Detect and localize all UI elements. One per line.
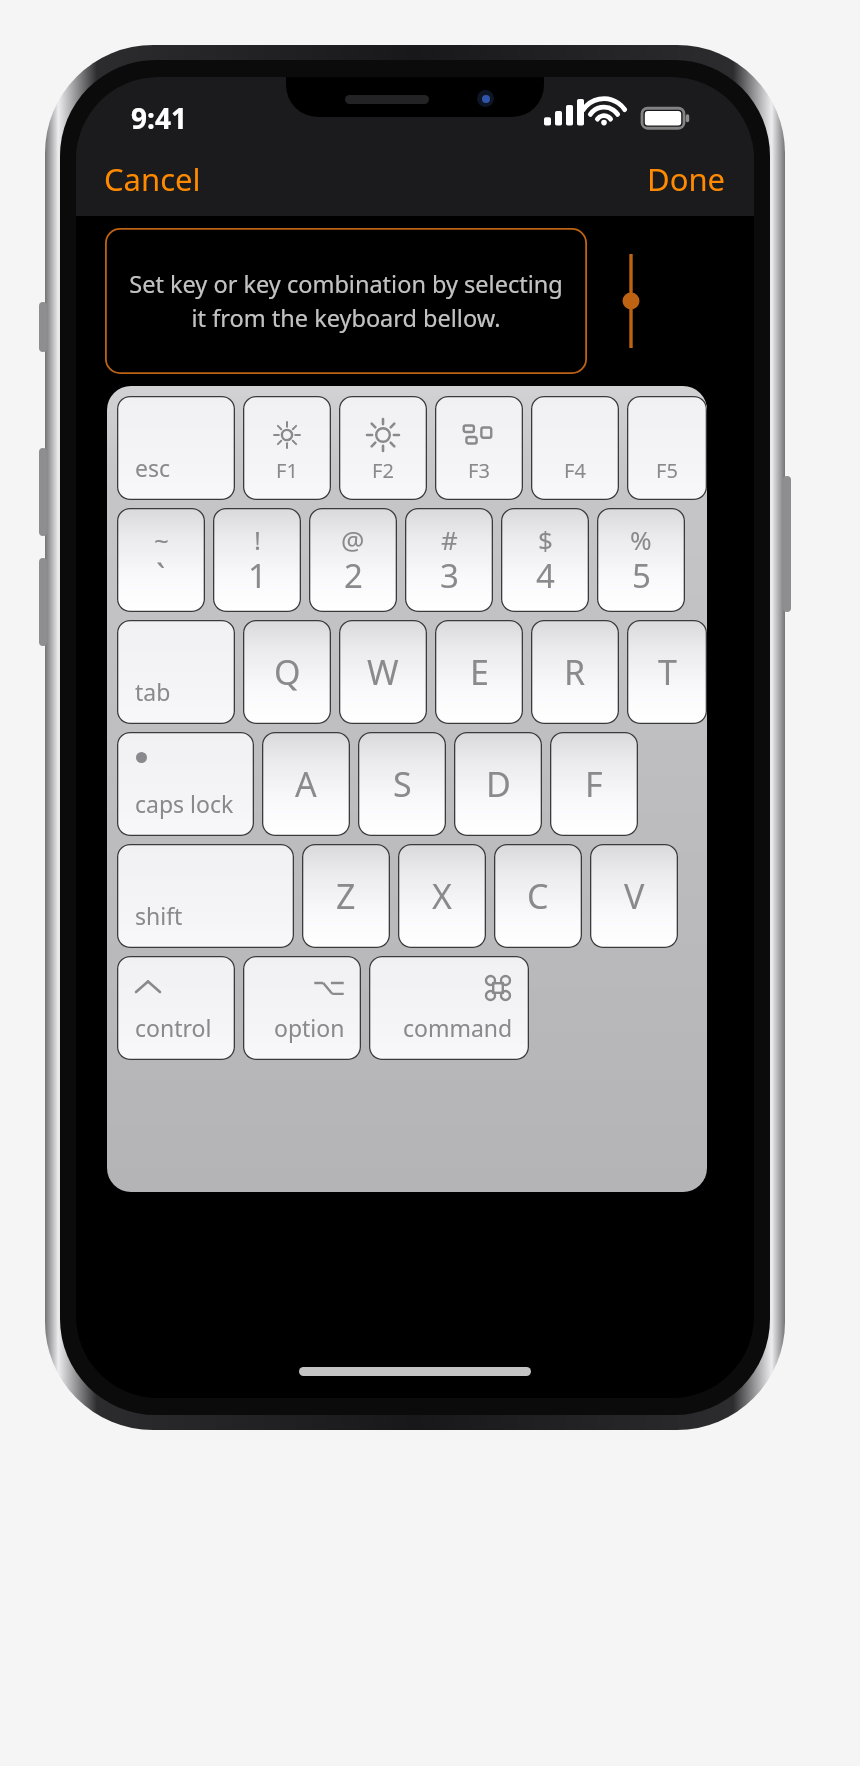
staticText: F2 — [372, 457, 394, 484]
staticText: 5 — [632, 553, 651, 598]
staticText: shift — [135, 900, 183, 931]
staticText: # — [441, 522, 458, 557]
button[interactable]: S — [358, 732, 446, 836]
button[interactable]: Z — [302, 844, 390, 948]
staticText: Done — [647, 158, 726, 200]
staticText: ` — [156, 553, 166, 598]
staticText: F4 — [564, 457, 586, 484]
button[interactable]: F1 — [243, 396, 331, 500]
staticText: esc — [135, 452, 171, 483]
staticText: C — [527, 873, 549, 919]
staticText: 3 — [440, 553, 459, 598]
button[interactable]: F — [550, 732, 638, 836]
button[interactable]: F5 — [627, 396, 707, 500]
button[interactable]: option — [243, 956, 361, 1060]
staticText: tab — [135, 676, 171, 707]
button[interactable]: # — [405, 508, 493, 612]
button[interactable]: Q — [243, 620, 331, 724]
button[interactable]: shift — [117, 844, 294, 948]
staticText: R — [564, 649, 586, 695]
staticText: caps lock — [135, 788, 234, 819]
button[interactable]: W — [339, 620, 427, 724]
staticText: F — [585, 761, 603, 807]
button[interactable]: % — [597, 508, 685, 612]
button[interactable]: Key indicator — [613, 254, 649, 348]
staticText: T — [658, 649, 677, 695]
staticText: A — [295, 761, 317, 807]
button[interactable]: Set key or key combination by selecting … — [105, 228, 587, 374]
button[interactable]: caps lock — [117, 732, 254, 836]
button[interactable]: tab — [117, 620, 235, 724]
button[interactable]: F2 — [339, 396, 427, 500]
staticText: 9:41 — [131, 99, 187, 137]
staticText: ! — [254, 522, 261, 557]
staticText: S — [393, 761, 412, 807]
button[interactable]: Cancel — [92, 150, 213, 208]
staticText: Cancel — [104, 158, 201, 200]
staticText: % — [630, 522, 652, 557]
staticText: E — [470, 649, 489, 695]
button[interactable]: ~ — [117, 508, 205, 612]
staticText: 1 — [248, 553, 267, 598]
button[interactable]: D — [454, 732, 542, 836]
button[interactable]: C — [494, 844, 582, 948]
staticText: Set key or key combination by selecting … — [129, 268, 563, 334]
staticText: option — [274, 1012, 345, 1043]
button[interactable]: F3 — [435, 396, 523, 500]
staticText: @ — [341, 522, 365, 557]
staticText: F5 — [656, 457, 678, 484]
staticText: W — [367, 649, 399, 695]
staticText: F1 — [276, 457, 298, 484]
staticText: 4 — [536, 553, 555, 598]
staticText: control — [135, 1012, 212, 1043]
button[interactable]: X — [398, 844, 486, 948]
staticText: X — [432, 873, 452, 919]
staticText: D — [486, 761, 511, 807]
staticText: Q — [274, 649, 301, 695]
button[interactable]: Done — [635, 150, 738, 208]
staticText: ~ — [154, 522, 169, 557]
staticText: F3 — [468, 457, 490, 484]
button[interactable]: A — [262, 732, 350, 836]
button[interactable]: control — [117, 956, 235, 1060]
staticText: V — [624, 873, 645, 919]
button[interactable]: T — [627, 620, 707, 724]
button[interactable]: V — [590, 844, 678, 948]
button[interactable]: R — [531, 620, 619, 724]
staticText: 2 — [344, 553, 363, 598]
button[interactable]: ! — [213, 508, 301, 612]
staticText: $ — [538, 522, 553, 557]
button[interactable]: F4 — [531, 396, 619, 500]
button[interactable]: E — [435, 620, 523, 724]
button[interactable]: $ — [501, 508, 589, 612]
button[interactable]: @ — [309, 508, 397, 612]
staticText: command — [403, 1012, 513, 1043]
button[interactable]: esc — [117, 396, 235, 500]
button[interactable]: command — [369, 956, 529, 1060]
staticText: Z — [336, 873, 356, 919]
